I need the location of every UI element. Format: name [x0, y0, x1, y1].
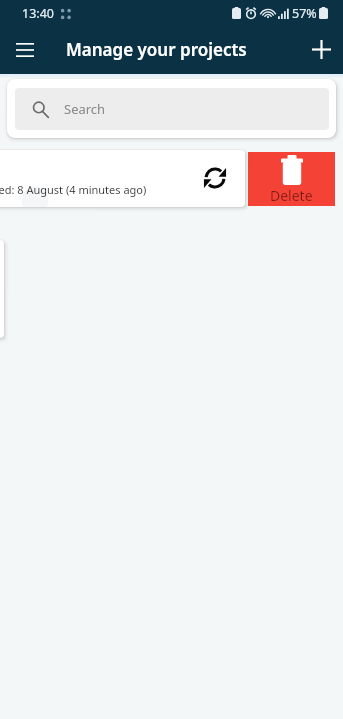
staticText: 57% [292, 5, 317, 22]
button[interactable]: Add project [294, 26, 343, 73]
staticText: 13:40 [22, 5, 54, 22]
staticText: Manage your projects [66, 38, 247, 61]
staticText: Delete [270, 186, 313, 205]
button[interactable] [0, 240, 4, 338]
button[interactable]: Search [15, 88, 329, 130]
button[interactable]: Refresh [203, 166, 227, 190]
button[interactable]: Last updated: 8 August (4 minutes ago) [0, 150, 245, 207]
button[interactable]: Open navigation menu [0, 26, 49, 73]
staticText: Search [64, 100, 106, 118]
button[interactable]: Delete [248, 152, 335, 206]
staticText: Last updated: 8 August (4 minutes ago) [0, 182, 147, 197]
